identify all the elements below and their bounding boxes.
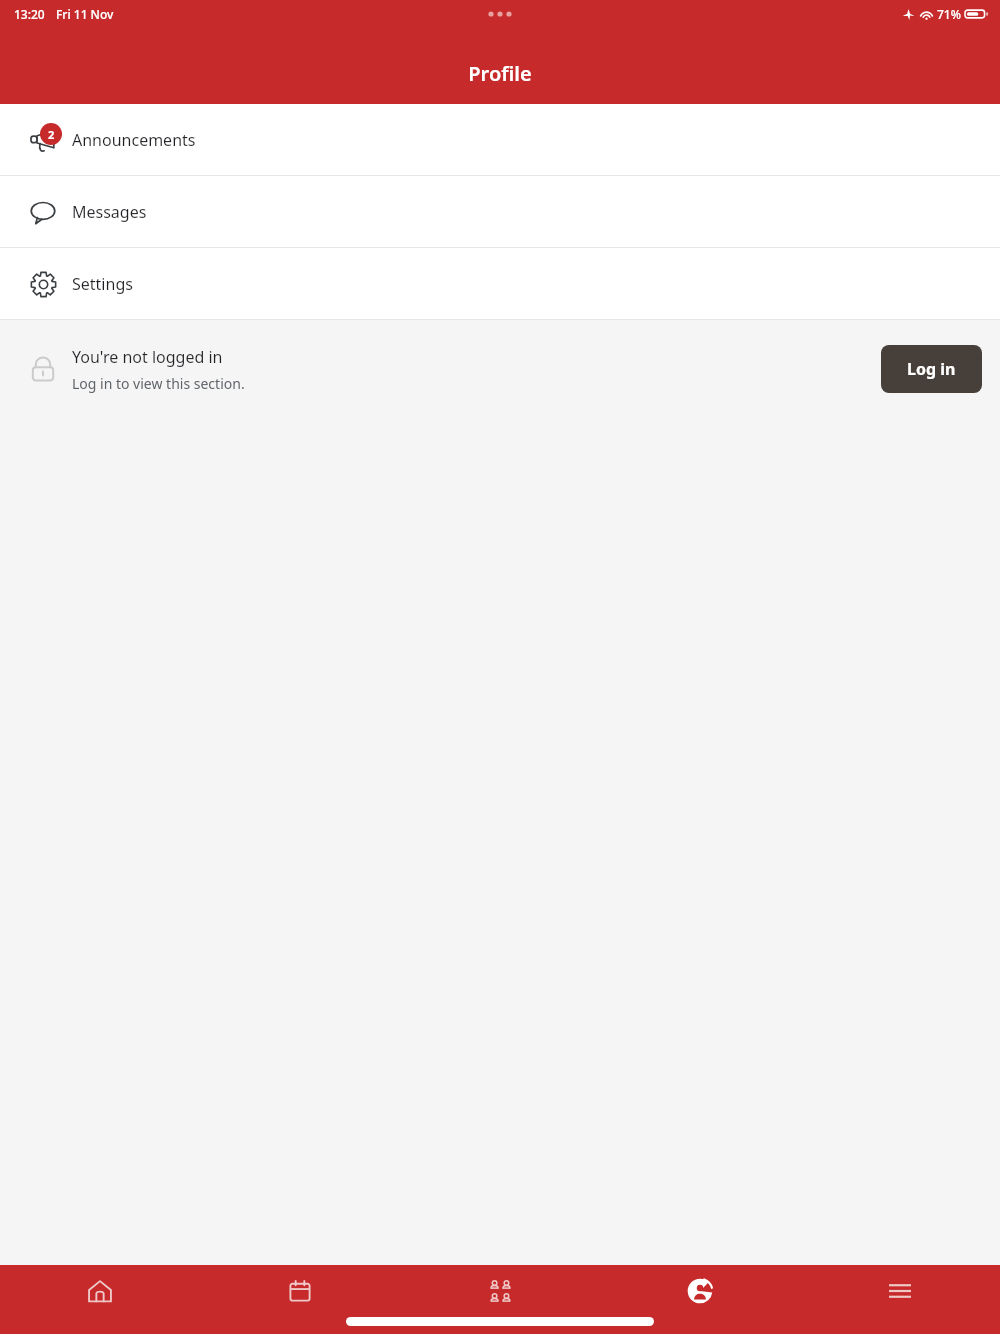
staticText: 2 [48,127,55,142]
button[interactable]: Home [0,1265,200,1317]
button[interactable]: Log in [881,345,982,393]
staticText: Settings [72,273,133,295]
button[interactable]: Messages [0,176,1000,247]
staticText: Log in [907,358,956,380]
button[interactable]: 2 [0,104,1000,175]
button[interactable]: Settings [0,248,1000,319]
staticText: 71% [937,6,961,22]
staticText: 13:20 [14,6,45,22]
staticText: Log in to view this section. [72,374,245,393]
staticText: Profile [468,60,532,87]
button[interactable]: You're not logged in [0,320,1000,418]
staticText: Messages [72,201,147,223]
staticText: Announcements [72,129,196,151]
button[interactable]: Profile [600,1265,800,1317]
button[interactable]: Calendar [200,1265,400,1317]
staticText: Fri 11 Nov [56,6,114,22]
staticText: You're not logged in [72,346,223,368]
button[interactable]: Groups [400,1265,600,1317]
button[interactable]: Menu [800,1265,1000,1317]
